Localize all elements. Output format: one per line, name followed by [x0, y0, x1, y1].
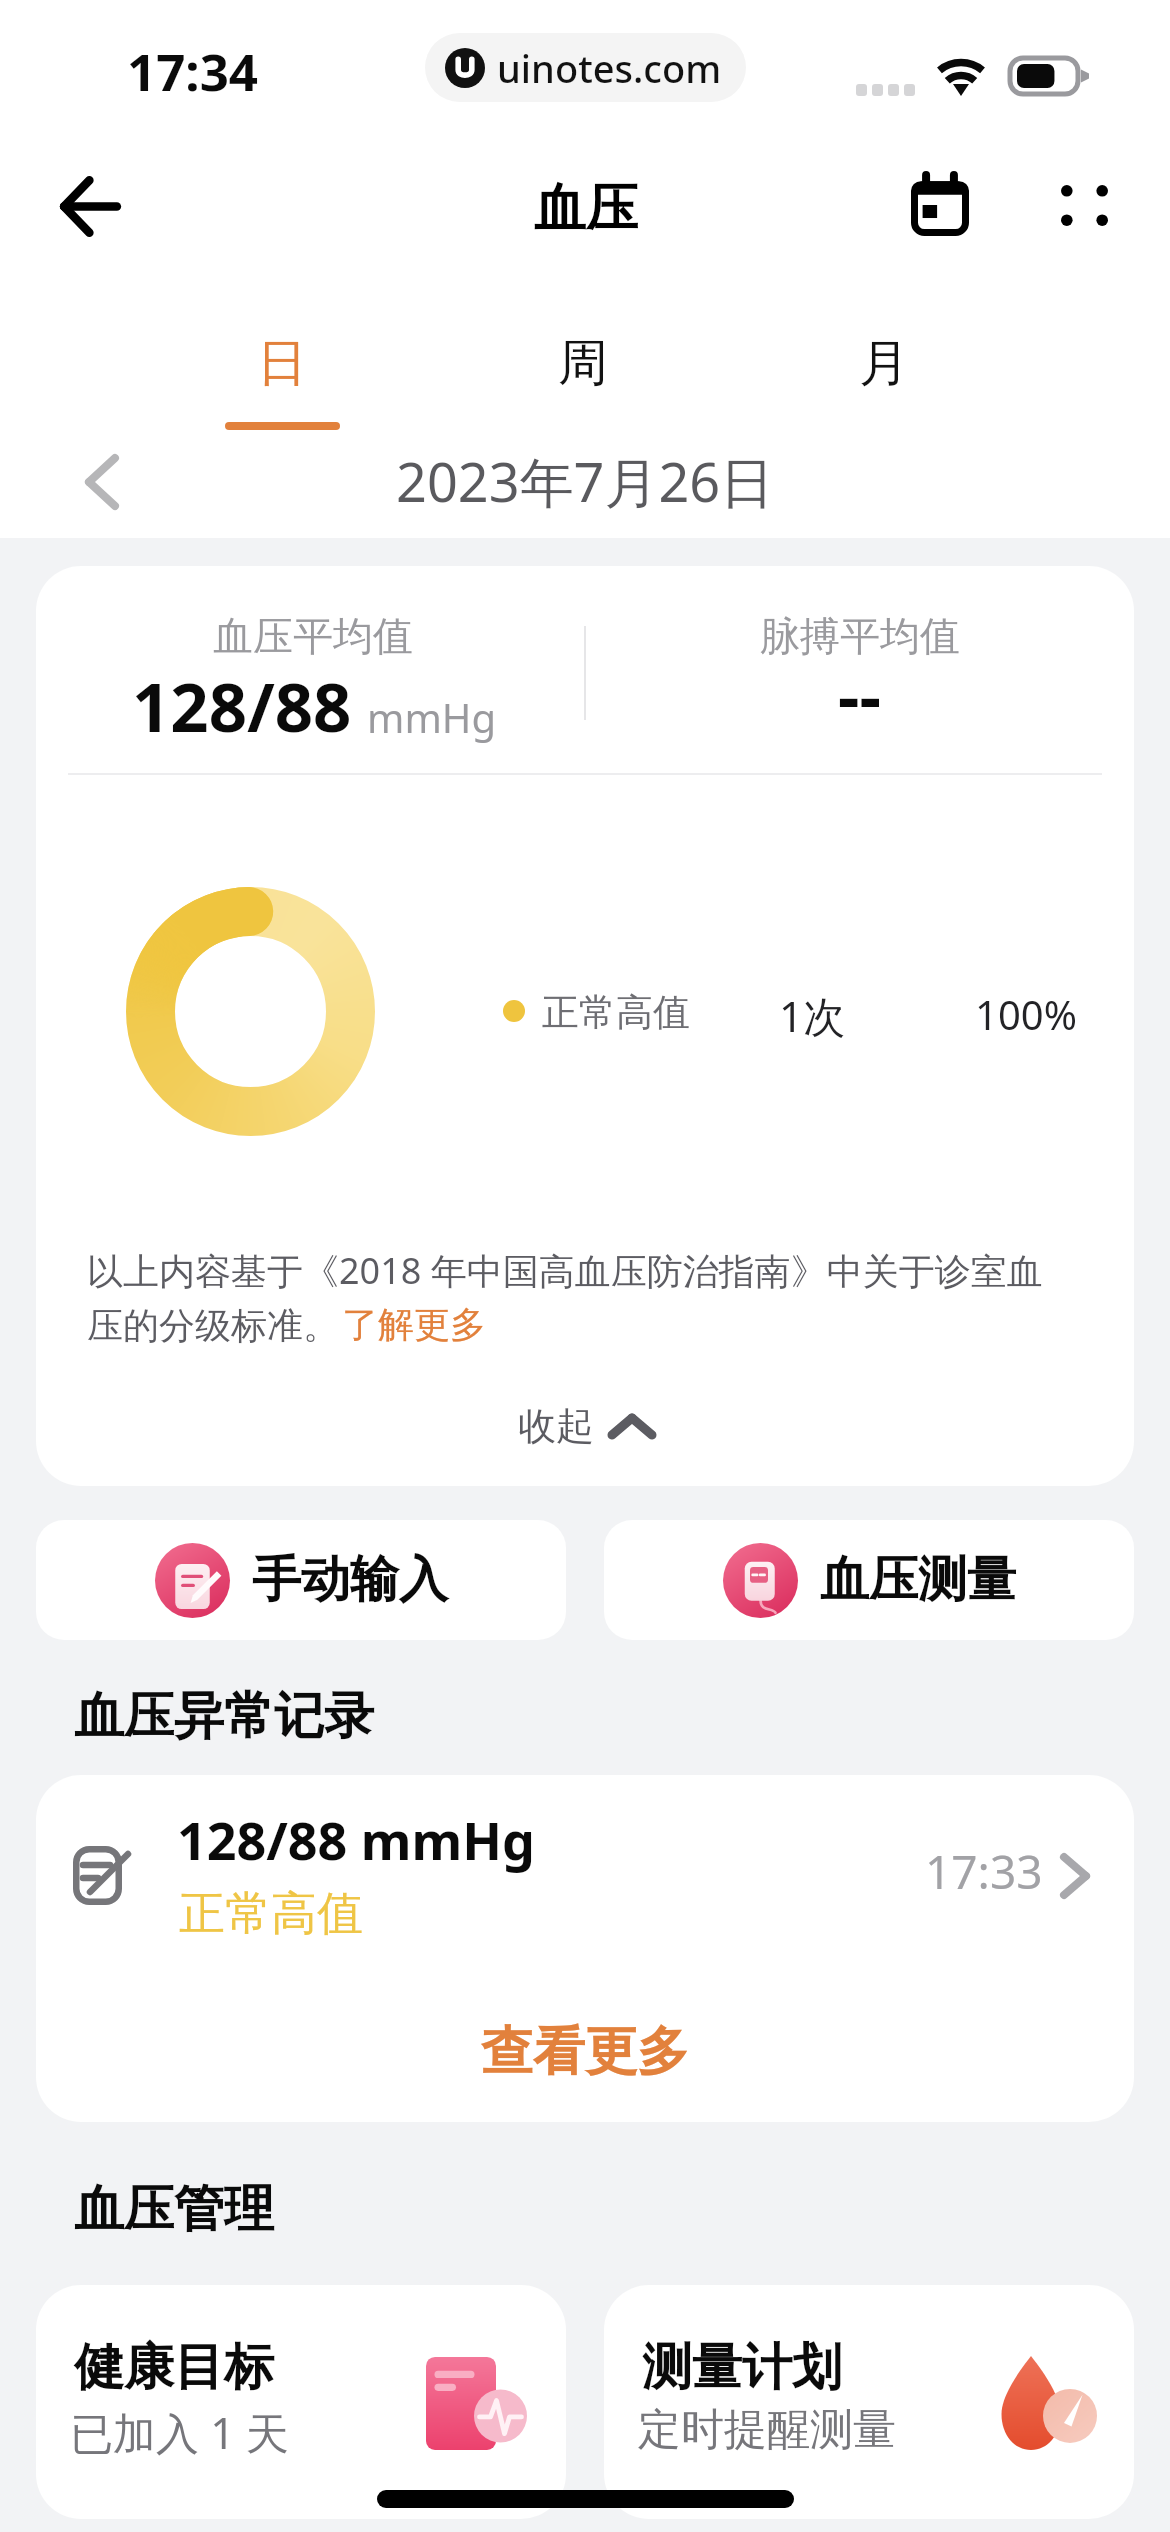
button[interactable]: 日: [132, 266, 432, 426]
staticText: 血压平均值: [213, 611, 413, 661]
staticText: 血压测量: [820, 1549, 1016, 1611]
staticText: 128/88 mmHg: [177, 1804, 535, 1875]
button[interactable]: Back: [40, 156, 140, 256]
staticText: 血压: [534, 176, 638, 242]
button[interactable]: 血压测量: [604, 1520, 1134, 1640]
button[interactable]: 测量计划: [604, 2285, 1134, 2519]
staticText: 定时提醒测量: [638, 2403, 896, 2457]
button[interactable]: Calendar: [890, 155, 990, 255]
button[interactable]: 月: [733, 266, 1034, 426]
staticText: 周: [558, 332, 608, 395]
staticText: 了解更多: [342, 1302, 486, 1347]
staticText: 100%: [975, 987, 1077, 1041]
staticText: 月: [859, 332, 909, 395]
staticText: 128/88: [132, 660, 352, 751]
button[interactable]: 查看更多: [36, 1981, 1134, 2122]
staticText: 2023年7月26日: [396, 444, 775, 518]
staticText: 脉搏平均值: [760, 611, 960, 661]
button[interactable]: 了解更多: [342, 1302, 486, 1347]
staticText: 1次: [779, 987, 846, 1044]
staticText: 血压异常记录: [74, 1685, 374, 1748]
staticText: 17:33: [925, 1840, 1043, 1903]
staticText: 测量计划: [642, 2336, 842, 2399]
button[interactable]: 周: [432, 266, 733, 426]
button[interactable]: 128/88 mmHg: [36, 1775, 1134, 1981]
button[interactable]: Previous day: [62, 442, 142, 522]
staticText: 日: [257, 332, 307, 395]
staticText: 血压管理: [74, 2178, 274, 2241]
staticText: 17:34: [127, 36, 259, 105]
staticText: 已加入 1 天: [70, 2403, 289, 2462]
staticText: mmHg: [367, 690, 497, 744]
staticText: --: [838, 649, 881, 740]
button[interactable]: More options: [1034, 155, 1134, 255]
staticText: 收起: [518, 1402, 594, 1450]
staticText: 正常高值: [179, 1885, 363, 1943]
staticText: 以上内容基于《2018 年中国高血压防治指南》中关于诊室血压的分级标准。了解更多: [87, 1246, 1072, 1348]
staticText: 查看更多: [481, 2019, 689, 2085]
staticText: 健康目标: [74, 2336, 274, 2399]
staticText: 手动输入: [252, 1549, 448, 1611]
staticText: uinotes.com: [497, 42, 722, 94]
button[interactable]: 收起: [36, 1391, 1134, 1461]
button[interactable]: 健康目标: [36, 2285, 566, 2519]
staticText: 正常高值: [542, 989, 690, 1036]
button[interactable]: 手动输入: [36, 1520, 566, 1640]
